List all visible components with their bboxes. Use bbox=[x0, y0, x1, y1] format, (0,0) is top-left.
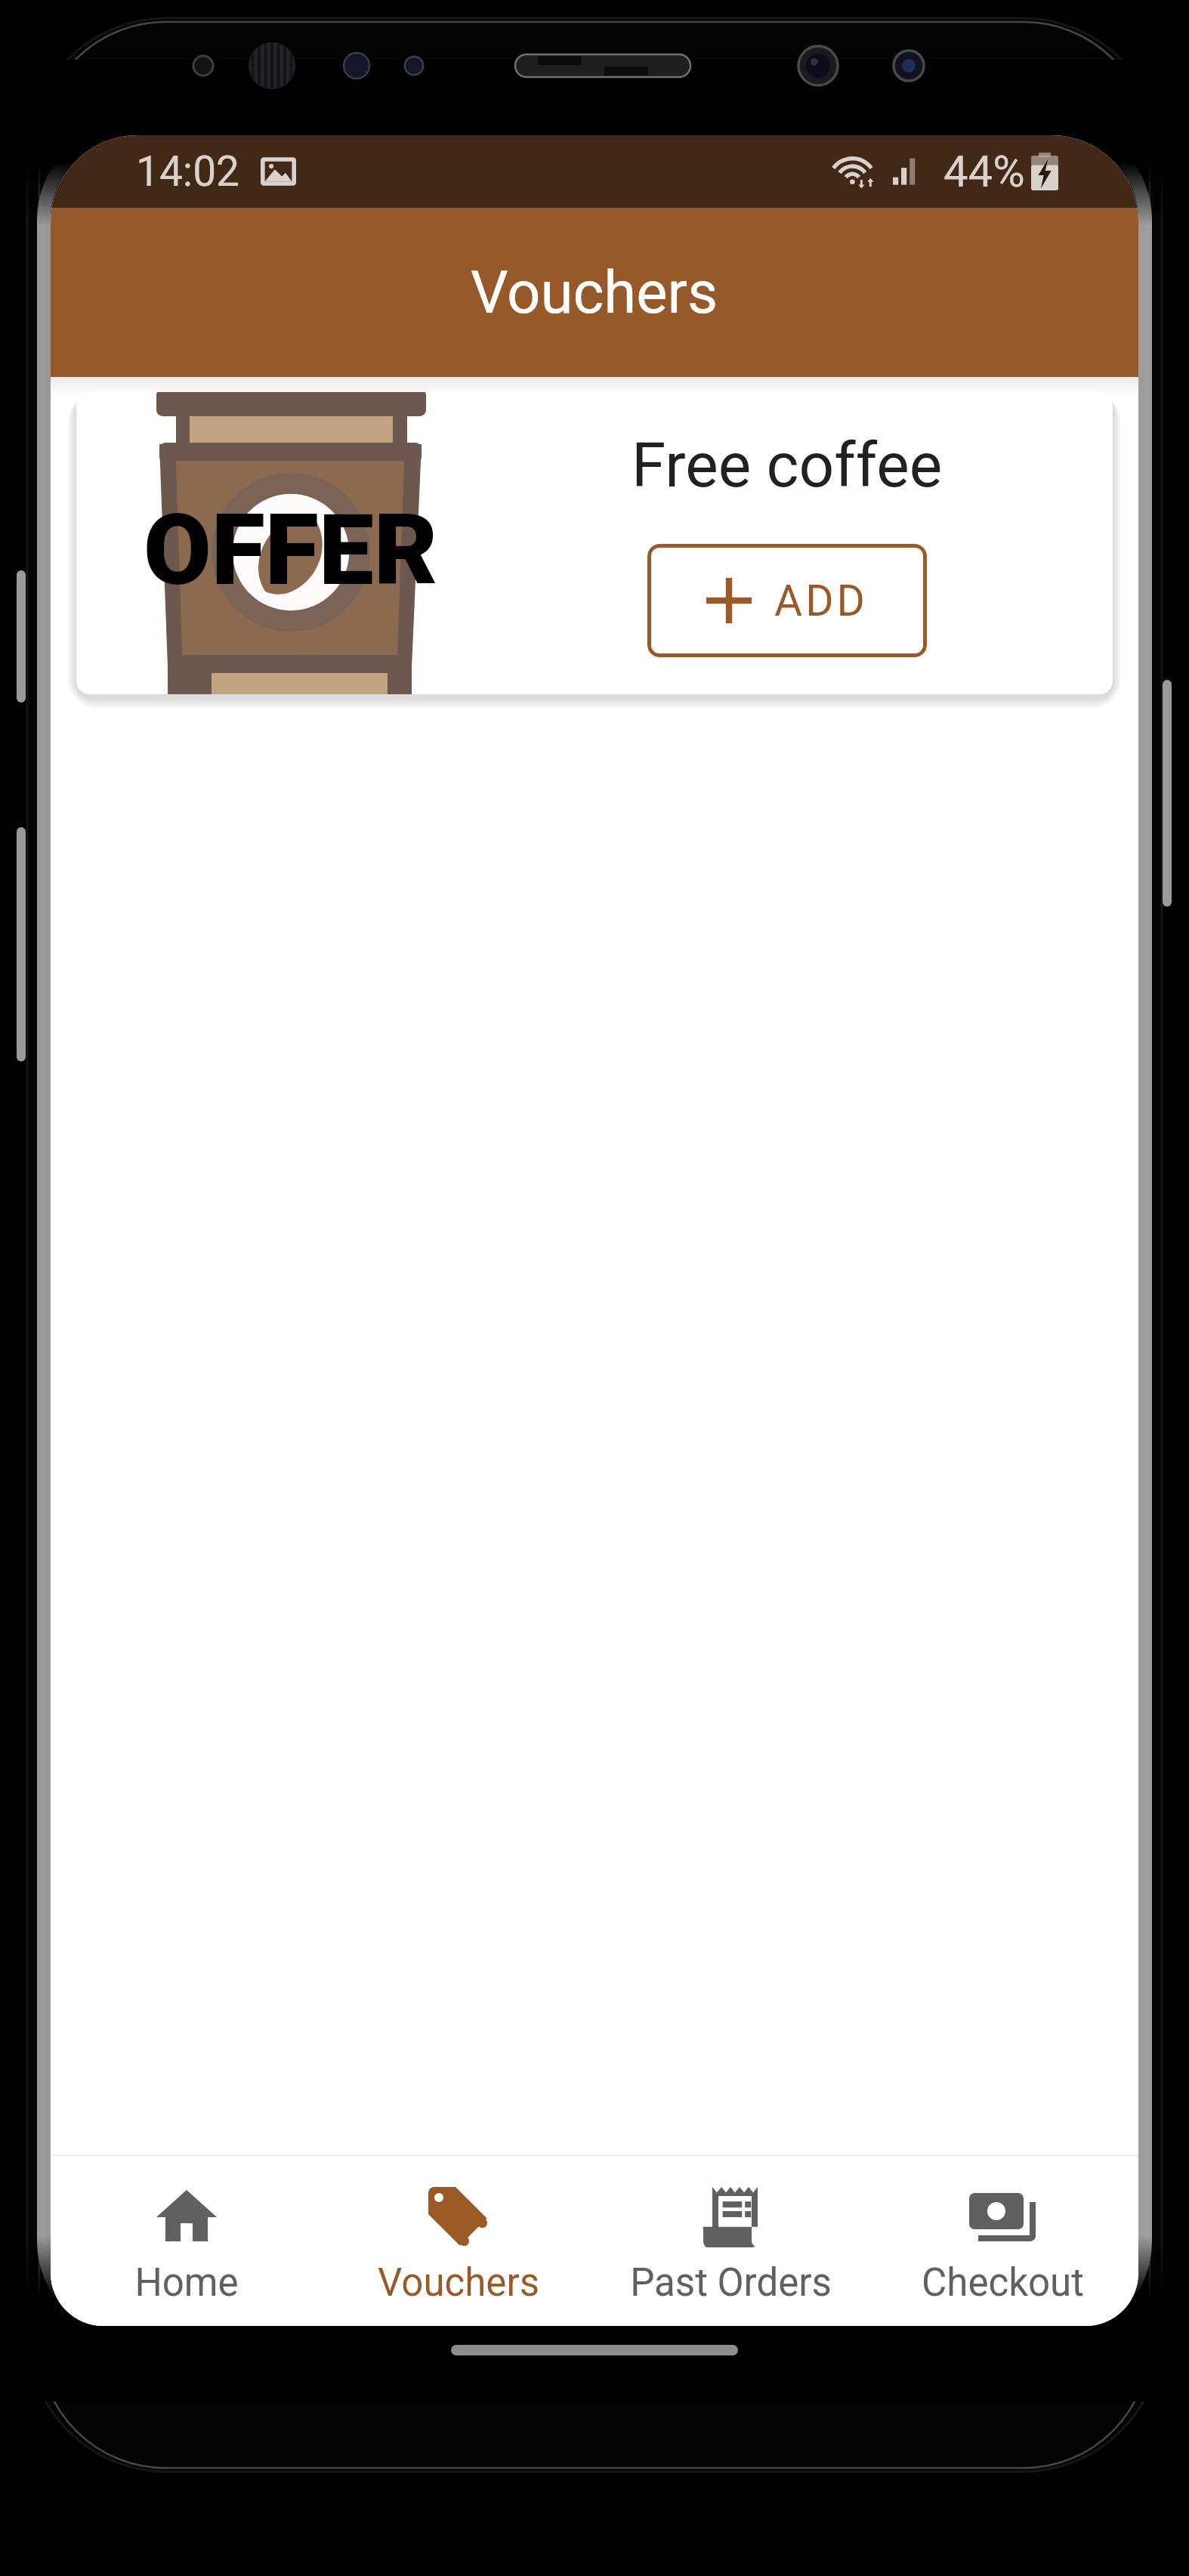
button[interactable]: Checkout bbox=[866, 2156, 1138, 2326]
staticText: ADD bbox=[774, 576, 868, 626]
button[interactable]: ADD bbox=[647, 544, 927, 657]
other: Checkout bbox=[966, 2181, 1039, 2253]
staticText: Home bbox=[134, 2260, 239, 2306]
staticText: Past Orders bbox=[630, 2260, 832, 2306]
button[interactable]: Vouchers bbox=[323, 2156, 594, 2326]
button[interactable]: Past Orders bbox=[594, 2156, 866, 2326]
staticText: Checkout bbox=[922, 2260, 1084, 2306]
staticText: Free coffee bbox=[632, 429, 943, 502]
button[interactable]: OFFER bbox=[76, 392, 1113, 694]
staticText: 44% bbox=[943, 146, 1025, 197]
other: Home bbox=[150, 2181, 223, 2253]
staticText: Vouchers bbox=[471, 258, 718, 327]
button[interactable]: Home bbox=[51, 2156, 323, 2326]
other: Past Orders bbox=[694, 2181, 767, 2253]
staticText: OFFER bbox=[144, 493, 438, 599]
staticText: 14:02 bbox=[136, 147, 239, 196]
staticText: Vouchers bbox=[378, 2260, 539, 2306]
other: Vouchers bbox=[422, 2181, 495, 2253]
